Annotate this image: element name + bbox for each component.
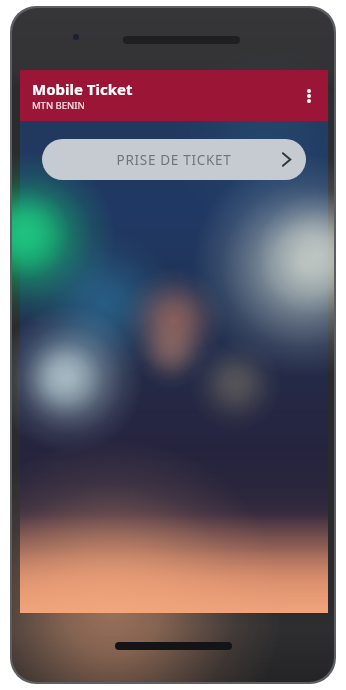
button[interactable]: More options — [296, 83, 322, 109]
button[interactable]: PRISE DE TICKET — [42, 139, 306, 180]
staticText: Mobile Ticket — [32, 79, 133, 99]
staticText: PRISE DE TICKET — [42, 151, 306, 169]
staticText: MTN BENIN — [32, 99, 85, 112]
